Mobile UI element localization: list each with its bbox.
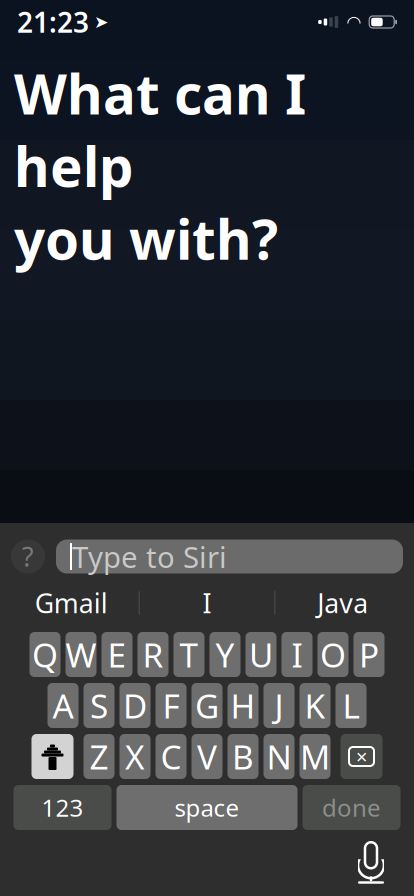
staticText: K: [304, 683, 325, 728]
staticText: F: [162, 683, 179, 728]
staticText: Gmail: [35, 585, 108, 621]
staticText: Type to Siri: [72, 537, 227, 576]
staticText: T: [179, 632, 198, 677]
staticText: I: [202, 585, 211, 621]
button[interactable]: E: [101, 632, 132, 677]
staticText: O: [320, 632, 346, 677]
staticText: J: [274, 683, 283, 728]
staticText: H: [230, 683, 255, 728]
staticText: 123: [41, 792, 83, 823]
button[interactable]: M: [299, 734, 330, 779]
staticText: E: [107, 632, 126, 677]
staticText: ◠: [347, 12, 360, 32]
button[interactable]: Q: [29, 632, 60, 677]
staticText: X: [125, 734, 145, 779]
staticText: I: [291, 632, 302, 677]
staticText: 21:23: [17, 3, 89, 41]
button[interactable]: Type to Siri: [56, 539, 403, 573]
button[interactable]: Z: [83, 734, 114, 779]
staticText: N: [266, 734, 291, 779]
staticText: Y: [215, 632, 234, 677]
staticText: M: [300, 734, 330, 779]
button[interactable]: Java: [275, 583, 410, 623]
staticText: L: [342, 683, 359, 728]
button[interactable]: J: [263, 683, 294, 728]
staticText: B: [232, 734, 254, 779]
staticText: What can I help you with?: [14, 57, 306, 275]
button[interactable]: X: [119, 734, 150, 779]
button[interactable]: H: [227, 683, 258, 728]
staticText: D: [123, 683, 147, 728]
button[interactable]: Gmail: [4, 583, 139, 623]
button[interactable]: F: [155, 683, 186, 728]
button[interactable]: C: [155, 734, 186, 779]
button[interactable]: Dictate: [344, 836, 398, 890]
button[interactable]: N: [263, 734, 294, 779]
button[interactable]: U: [245, 632, 276, 677]
button[interactable]: L: [335, 683, 366, 728]
staticText: ?: [22, 539, 34, 574]
staticText: U: [249, 632, 273, 677]
button[interactable]: 123: [13, 785, 111, 830]
button[interactable]: Y: [209, 632, 240, 677]
staticText: V: [197, 734, 217, 779]
button[interactable]: I: [140, 583, 274, 623]
button[interactable]: B: [227, 734, 258, 779]
staticText: R: [142, 632, 163, 677]
button[interactable]: Delete: [340, 734, 382, 779]
staticText: C: [160, 734, 181, 779]
staticText: space: [174, 792, 239, 823]
button[interactable]: R: [137, 632, 168, 677]
staticText: Q: [32, 632, 58, 677]
button[interactable]: D: [119, 683, 150, 728]
button[interactable]: done: [302, 785, 400, 830]
staticText: A: [52, 683, 73, 728]
button[interactable]: Shift: [31, 734, 73, 779]
button[interactable]: G: [191, 683, 222, 728]
staticText: ➤: [94, 12, 109, 32]
staticText: done: [322, 792, 381, 823]
button[interactable]: I: [281, 632, 312, 677]
button[interactable]: W: [65, 632, 96, 677]
button[interactable]: K: [299, 683, 330, 728]
button[interactable]: O: [317, 632, 348, 677]
button[interactable]: V: [191, 734, 222, 779]
staticText: G: [195, 683, 219, 728]
staticText: S: [90, 683, 108, 728]
button[interactable]: T: [173, 632, 204, 677]
staticText: Java: [317, 585, 368, 621]
button[interactable]: space: [116, 785, 297, 830]
button[interactable]: S: [83, 683, 114, 728]
button[interactable]: Siri help: [11, 539, 45, 573]
staticText: ×: [356, 743, 367, 770]
staticText: W: [65, 632, 96, 677]
button[interactable]: A: [47, 683, 78, 728]
staticText: Z: [89, 734, 108, 779]
button[interactable]: P: [353, 632, 384, 677]
staticText: P: [359, 632, 379, 677]
